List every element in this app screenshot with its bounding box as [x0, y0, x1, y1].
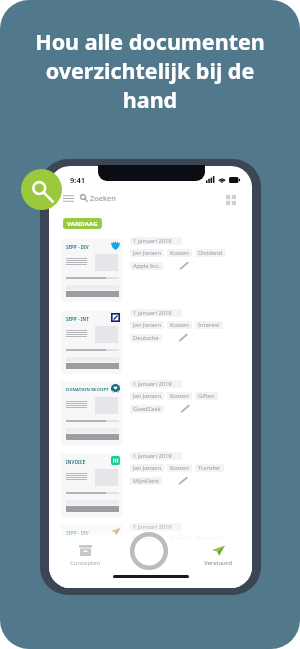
staticText: Kosten	[170, 464, 189, 472]
staticText: INVOICE	[66, 459, 86, 465]
button[interactable]: Edit	[178, 333, 189, 342]
button[interactable]: Scan document	[129, 531, 169, 571]
button[interactable]: Grid view	[224, 193, 238, 207]
staticText: Jan Jansen	[133, 321, 161, 329]
staticText: SEPP - DIV	[66, 244, 89, 250]
staticText: Jan Jansen	[133, 464, 161, 472]
staticText: Transfer	[198, 464, 221, 472]
button[interactable]: Concepten	[62, 545, 108, 567]
button[interactable]: DONATION RECEIPT	[49, 382, 252, 445]
staticText: Verstuurd	[204, 559, 232, 567]
button[interactable]: Edit	[180, 404, 191, 413]
staticText: SEPP - INT	[66, 316, 89, 322]
staticText: 1 januari 2019	[133, 452, 172, 460]
button[interactable]: VANDAAG	[63, 218, 102, 229]
button[interactable]: SEPP - DIV	[49, 239, 252, 302]
staticText: Hou alle documenten overzichtelijk bij d…	[25, 27, 275, 114]
staticText: MijnKlant	[133, 477, 159, 485]
staticText: 1 januari 2019	[133, 380, 172, 388]
staticText: GoedZaak	[133, 405, 161, 413]
staticText: 1 januari 2019	[133, 309, 172, 317]
staticText: Concepten	[70, 559, 101, 567]
staticText: Kosten	[170, 249, 189, 257]
staticText: Dividend	[198, 249, 223, 257]
button[interactable]: Search	[21, 169, 62, 210]
staticText: DONATION RECEIPT	[66, 387, 109, 393]
staticText: VANDAAG	[67, 220, 98, 228]
staticText: Giften	[198, 392, 215, 400]
staticText: 1 januari 2019	[133, 523, 172, 531]
button[interactable]: Edit	[178, 476, 189, 485]
staticText: Kosten	[170, 392, 189, 400]
button[interactable]: SEPP - INT	[49, 311, 252, 374]
button[interactable]: Verstuurd	[195, 545, 241, 567]
button[interactable]: INVOICE	[49, 454, 252, 517]
staticText: 9:41	[70, 175, 85, 185]
staticText: Interest	[198, 321, 220, 329]
staticText: Apple Inc.	[133, 548, 160, 556]
staticText: Zoeken	[90, 193, 116, 203]
staticText: Kosten	[170, 321, 189, 329]
staticText: Jan Jansen	[133, 392, 161, 400]
button[interactable]: Edit	[179, 261, 190, 270]
button[interactable]: SEPP - DIV	[49, 525, 252, 588]
staticText: SEPP - DIV	[66, 530, 89, 536]
staticText: Apple Inc.	[133, 262, 160, 270]
staticText: Jan Jansen	[133, 249, 161, 257]
button[interactable]: Zoeken	[49, 192, 252, 204]
staticText: Jan Jansen	[133, 535, 161, 543]
staticText: Deutsche	[133, 334, 159, 342]
staticText: 1 januari 2019	[133, 237, 172, 245]
